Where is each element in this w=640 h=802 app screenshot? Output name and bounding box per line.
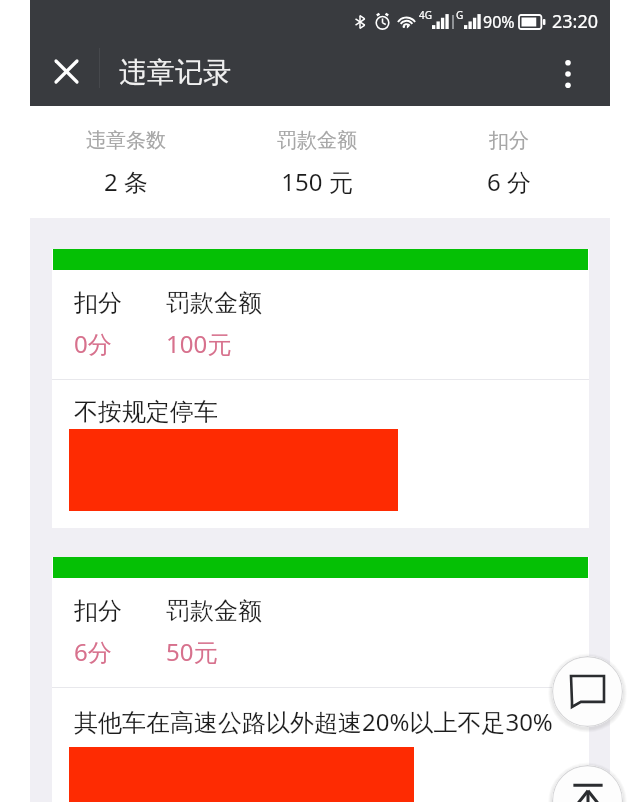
staticText: 不按规定停车 [74,397,218,427]
staticText: 扣分 [489,128,529,153]
button[interactable]: 扣分 [52,249,589,528]
staticText: 违章记录 [119,55,231,90]
staticText: 6分 [74,635,112,668]
staticText: 50元 [166,635,218,668]
button[interactable]: More options [540,46,596,102]
staticText: 90% [483,11,515,33]
staticText: 其他车在高速公路以外超速20%以上不足30% [74,705,553,738]
staticText: 扣分 [74,288,122,318]
staticText: 罚款金额 [277,128,357,153]
button[interactable]: 扣分 [52,557,589,802]
staticText: 违章条数 [86,128,166,153]
staticText: 100元 [166,327,232,360]
staticText: 23:20 [552,9,599,34]
staticText: G [456,8,464,22]
staticText: 150 元 [281,165,353,198]
staticText: 2 条 [104,165,148,198]
button[interactable]: Scroll to top [552,765,623,802]
staticText: 4G [419,8,432,22]
button[interactable]: Close [36,41,96,101]
staticText: 0分 [74,327,112,360]
staticText: 扣分 [74,596,122,626]
button[interactable]: Chat [552,656,623,727]
staticText: 6 分 [487,165,531,198]
staticText: 罚款金额 [166,596,262,626]
staticText: 罚款金额 [166,288,262,318]
